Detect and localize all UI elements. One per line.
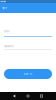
button[interactable]: Home bbox=[19, 92, 37, 100]
button[interactable]: SIGN IN bbox=[4, 69, 52, 79]
staticText: SIGN IN bbox=[23, 73, 32, 75]
button[interactable]: Recents bbox=[37, 92, 56, 100]
staticText: Email bbox=[4, 30, 10, 33]
staticText: Password bbox=[4, 45, 13, 48]
staticText: Sign in bbox=[2, 7, 7, 9]
button[interactable]: Back bbox=[0, 92, 19, 100]
